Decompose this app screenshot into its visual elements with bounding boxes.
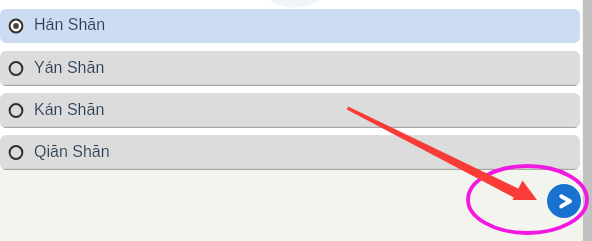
staticText: Kán Shān	[34, 101, 105, 119]
button[interactable]: Qiān Shān	[0, 135, 580, 170]
button[interactable]: Kán Shān	[0, 93, 580, 128]
staticText: Hán Shān	[34, 16, 106, 34]
button[interactable]: Hán Shān	[0, 9, 580, 43]
button[interactable]: Next question	[547, 184, 581, 218]
button[interactable]: Yán Shān	[0, 51, 580, 86]
staticText: Yán Shān	[34, 59, 105, 77]
staticText: Qiān Shān	[34, 143, 110, 161]
